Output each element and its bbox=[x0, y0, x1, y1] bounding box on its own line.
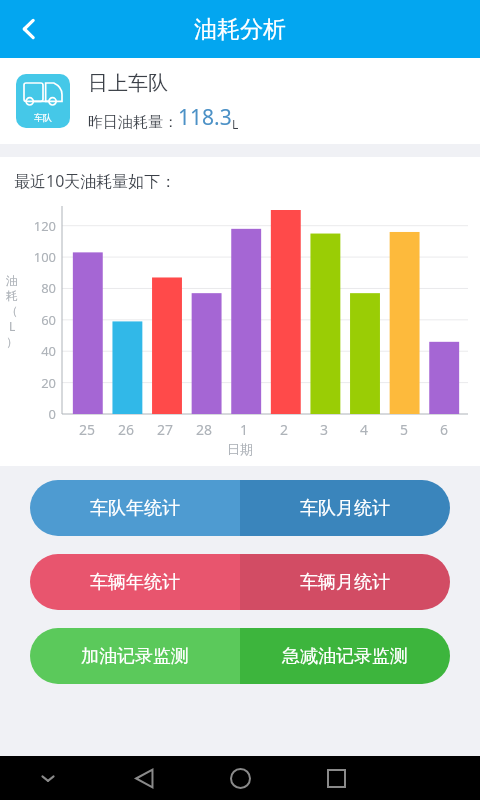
staticText: 日上车队 bbox=[88, 71, 168, 96]
button[interactable]: 车辆月统计 bbox=[240, 554, 450, 610]
staticText: 加油记录监测 bbox=[81, 645, 189, 668]
staticText: 2 bbox=[280, 420, 289, 439]
staticText: 油耗分析 bbox=[194, 15, 286, 44]
staticText: 1 bbox=[240, 420, 249, 439]
other: Fleet bbox=[16, 74, 70, 128]
staticText: 40 bbox=[4, 342, 56, 360]
staticText: 20 bbox=[4, 374, 56, 392]
staticText: 昨日油耗量： bbox=[88, 113, 178, 132]
button[interactable]: Fleet bbox=[0, 58, 480, 144]
button[interactable]: Back bbox=[96, 756, 192, 800]
staticText: 车辆年统计 bbox=[90, 571, 180, 594]
staticText: ） bbox=[6, 334, 18, 349]
staticText: 118.3 bbox=[178, 103, 232, 132]
staticText: 27 bbox=[157, 420, 174, 439]
staticText: 60 bbox=[4, 311, 56, 329]
staticText: 120 bbox=[4, 217, 56, 235]
button[interactable]: 车辆年统计 bbox=[30, 554, 240, 610]
button[interactable]: Recents bbox=[288, 756, 384, 800]
staticText: 80 bbox=[4, 279, 56, 297]
button[interactable]: Hide bbox=[0, 756, 96, 800]
button[interactable]: Back bbox=[0, 0, 58, 58]
staticText: 0 bbox=[4, 405, 56, 423]
staticText: 26 bbox=[118, 420, 135, 439]
button[interactable]: 车队月统计 bbox=[240, 480, 450, 536]
staticText: 车队 bbox=[34, 112, 52, 123]
button[interactable]: 急减油记录监测 bbox=[240, 628, 450, 684]
staticText: 100 bbox=[4, 248, 56, 266]
staticText: L bbox=[9, 318, 16, 334]
staticText: 油 bbox=[6, 273, 18, 288]
staticText: L bbox=[232, 116, 239, 132]
staticText: （ bbox=[6, 303, 18, 318]
staticText: 车队月统计 bbox=[300, 497, 390, 520]
staticText: 5 bbox=[400, 420, 409, 439]
staticText: 耗 bbox=[6, 288, 18, 303]
staticText: 最近10天油耗量如下： bbox=[14, 170, 177, 192]
button[interactable]: 车队年统计 bbox=[30, 480, 240, 536]
staticText: 车辆月统计 bbox=[300, 571, 390, 594]
staticText: 6 bbox=[440, 420, 449, 439]
staticText: 急减油记录监测 bbox=[282, 645, 408, 668]
staticText: 28 bbox=[196, 420, 213, 439]
staticText: 车队年统计 bbox=[90, 497, 180, 520]
staticText: 25 bbox=[79, 420, 96, 439]
staticText: 4 bbox=[360, 420, 369, 439]
button[interactable]: Home bbox=[192, 756, 288, 800]
button[interactable]: 加油记录监测 bbox=[30, 628, 240, 684]
staticText: 日期 bbox=[227, 441, 253, 457]
staticText: 3 bbox=[320, 420, 329, 439]
